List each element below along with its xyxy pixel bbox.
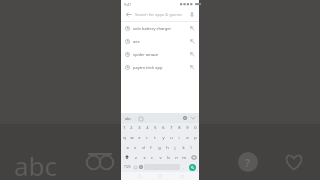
staticText: 6 — [162, 125, 165, 130]
staticText: u — [170, 135, 173, 140]
staticText: Search for apps & games — [135, 12, 187, 17]
staticText: p — [194, 135, 197, 140]
staticText: 2 — [130, 125, 133, 130]
button[interactable]: 9 — [183, 123, 191, 132]
staticText: abc — [14, 148, 58, 180]
button[interactable]: Home — [156, 172, 164, 180]
button[interactable]: spider amaze — [121, 48, 199, 61]
staticText: 7 — [170, 125, 173, 130]
staticText: abc — [125, 116, 131, 121]
button[interactable]: s — [131, 142, 139, 152]
button[interactable]: 2 — [128, 123, 135, 132]
button[interactable]: 3 — [135, 123, 143, 132]
button[interactable]: o — [183, 132, 191, 142]
staticText: 3 — [138, 125, 141, 130]
button[interactable]: c — [148, 152, 156, 162]
button[interactable]: e — [135, 132, 143, 142]
button[interactable]: Back — [124, 10, 133, 19]
button[interactable]: p — [191, 132, 199, 142]
button[interactable]: k — [179, 142, 187, 152]
button[interactable]: xolo battery charger — [121, 22, 199, 35]
button[interactable]: i — [175, 132, 183, 142]
staticText: x — [143, 155, 146, 160]
staticText: ? — [245, 155, 251, 170]
button[interactable]: Voice search — [187, 10, 196, 19]
staticText: b — [167, 155, 170, 160]
button[interactable]: Emoji — [132, 162, 138, 172]
button[interactable]: u — [167, 132, 175, 142]
staticText: q — [123, 135, 126, 140]
button[interactable]: m — [180, 152, 188, 162]
staticText: d — [142, 145, 145, 150]
staticText: a — [126, 145, 129, 150]
button[interactable]: 6 — [159, 123, 167, 132]
button[interactable]: Recents — [178, 172, 186, 180]
staticText: g — [158, 145, 161, 150]
button[interactable]: paytm trick app — [121, 61, 199, 74]
button[interactable]: 4 — [143, 123, 151, 132]
button[interactable]: n — [172, 152, 180, 162]
button[interactable]: w — [128, 132, 135, 142]
button[interactable]: Settings — [138, 162, 144, 172]
button[interactable]: b — [164, 152, 172, 162]
button[interactable]: y — [159, 132, 167, 142]
staticText: m — [182, 155, 186, 160]
button[interactable]: Stickers — [138, 116, 143, 121]
button[interactable]: r — [143, 132, 151, 142]
staticText: l — [190, 145, 192, 150]
staticText: 4 — [146, 125, 149, 130]
staticText: xolo battery charger — [133, 26, 190, 31]
staticText: 9 — [186, 125, 189, 130]
button[interactable]: Backspace — [188, 152, 199, 162]
staticText: paytm trick app — [133, 65, 190, 70]
button[interactable]: Search — [189, 164, 196, 171]
button[interactable]: 8 — [175, 123, 183, 132]
staticText: k — [182, 145, 185, 150]
staticText: c — [151, 155, 153, 160]
staticText: 5 — [154, 125, 157, 130]
button[interactable]: g — [155, 142, 163, 152]
staticText: f — [150, 145, 152, 150]
button[interactable]: 5 — [151, 123, 159, 132]
staticText: 1 — [123, 125, 126, 130]
button[interactable]: More options — [190, 115, 196, 121]
staticText: w — [130, 135, 134, 140]
button[interactable]: l — [187, 142, 195, 152]
button[interactable]: a — [124, 142, 131, 152]
button[interactable]: aex — [121, 35, 199, 48]
button[interactable]: 7 — [167, 123, 175, 132]
button[interactable]: Keyboard settings — [182, 115, 188, 121]
staticText: n — [175, 155, 178, 160]
button[interactable]: Back — [135, 172, 143, 180]
staticText: s — [134, 145, 136, 150]
button[interactable]: z — [132, 152, 140, 162]
button[interactable]: x — [140, 152, 148, 162]
staticText: v — [159, 155, 162, 160]
staticText: . — [183, 165, 184, 170]
button[interactable]: 0 — [191, 123, 199, 132]
button[interactable]: Shift — [121, 152, 132, 162]
button[interactable]: ?123 — [122, 162, 132, 172]
button[interactable]: j — [171, 142, 179, 152]
staticText: spider amaze — [133, 52, 190, 57]
staticText: y — [162, 135, 165, 140]
button[interactable]: abc — [124, 115, 132, 122]
staticText: h — [166, 145, 169, 150]
button[interactable]: q — [121, 132, 128, 142]
button[interactable]: d — [139, 142, 147, 152]
staticText: 9:41 — [124, 2, 131, 7]
button[interactable]: 1 — [121, 123, 128, 132]
button[interactable]: h — [163, 142, 171, 152]
staticText: 8 — [178, 125, 181, 130]
button[interactable]: t — [151, 132, 159, 142]
button[interactable]: v — [156, 152, 164, 162]
staticText: z — [135, 155, 137, 160]
button[interactable]: f — [147, 142, 155, 152]
staticText: t — [154, 135, 156, 140]
staticText: i — [178, 135, 180, 140]
staticText: e — [138, 135, 141, 140]
staticText: 0 — [194, 125, 197, 130]
staticText: o — [186, 135, 189, 140]
